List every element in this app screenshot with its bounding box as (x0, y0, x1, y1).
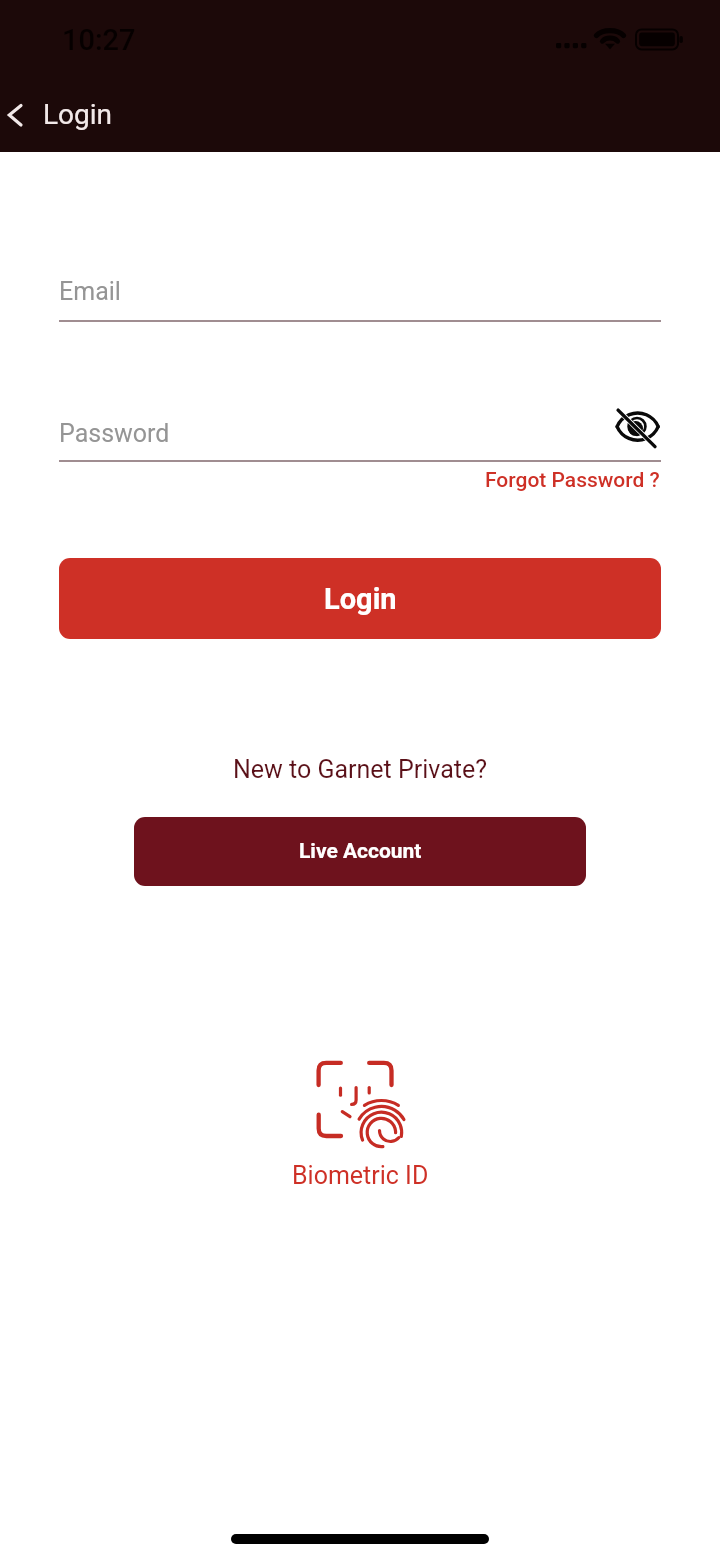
staticText: 10:27 (62, 23, 136, 57)
button[interactable]: Email (59, 268, 661, 322)
staticText: Login (43, 98, 113, 131)
staticText: New to Garnet Private? (0, 755, 720, 784)
button[interactable]: Show password (612, 401, 664, 453)
button[interactable]: Password (59, 408, 661, 462)
staticText: Live Account (299, 839, 422, 864)
staticText: Password (59, 419, 170, 448)
button[interactable]: Forgot Password ? (485, 468, 660, 493)
staticText: Email (59, 277, 121, 306)
staticText: Login (324, 582, 397, 616)
button[interactable]: Login (59, 558, 661, 639)
button[interactable]: Biometric ID (0, 1058, 720, 1190)
staticText: Biometric ID (292, 1161, 429, 1190)
button[interactable]: Back (0, 80, 46, 150)
button[interactable]: Live Account (134, 817, 586, 886)
